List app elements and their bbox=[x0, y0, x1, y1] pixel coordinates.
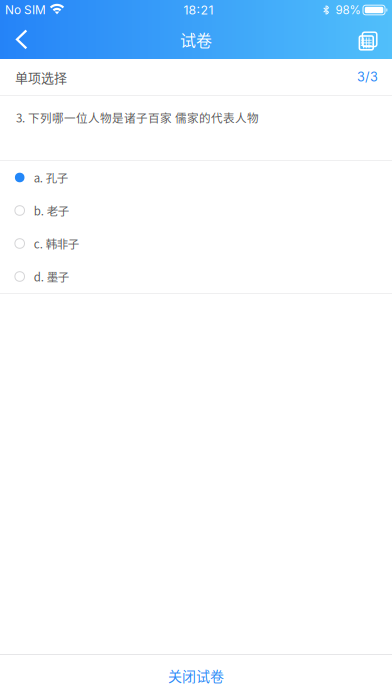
button[interactable]: a. 孔子 bbox=[0, 161, 392, 194]
button[interactable]: d. 墨子 bbox=[0, 260, 392, 293]
button[interactable]: c. 韩非子 bbox=[0, 227, 392, 260]
button[interactable]: b. 老子 bbox=[0, 194, 392, 227]
staticText: d. 墨子 bbox=[34, 268, 69, 285]
staticText: No SIM bbox=[5, 3, 46, 17]
staticText: 3. 下列哪一位人物是诸子百家 儒家的代表人物 bbox=[16, 109, 259, 126]
staticText: 关闭试卷 bbox=[168, 665, 224, 686]
staticText: 3/3 bbox=[357, 69, 378, 85]
button[interactable]: Back bbox=[0, 20, 44, 59]
staticText: b. 老子 bbox=[34, 202, 69, 219]
staticText: 98% bbox=[335, 3, 360, 17]
button[interactable]: Answer sheet bbox=[348, 20, 392, 59]
staticText: 单项选择 bbox=[15, 68, 67, 86]
staticText: 试卷 bbox=[180, 28, 212, 51]
staticText: 18:21 bbox=[183, 2, 213, 17]
button[interactable]: 关闭试卷 bbox=[0, 655, 392, 696]
staticText: c. 韩非子 bbox=[34, 235, 79, 252]
staticText: a. 孔子 bbox=[34, 169, 68, 186]
